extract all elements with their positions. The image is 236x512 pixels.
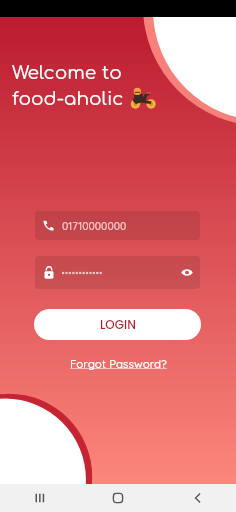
button[interactable]: Show password [174,256,200,289]
button[interactable]: LOGIN [34,309,201,340]
button[interactable]: Home [106,486,130,510]
button[interactable]: 01710000000 [35,211,200,240]
button[interactable]: Forgot Password? [64,352,173,374]
staticText: Welcome to [12,63,122,84]
button[interactable]: Recent apps [27,486,51,510]
staticText: Forgot Password? [70,356,167,370]
staticText: LOGIN [100,316,136,333]
staticText: 01710000000 [62,219,127,232]
button[interactable]: Show password [35,256,200,289]
staticText: food-aholic [12,89,124,110]
button[interactable]: Back [185,486,209,510]
